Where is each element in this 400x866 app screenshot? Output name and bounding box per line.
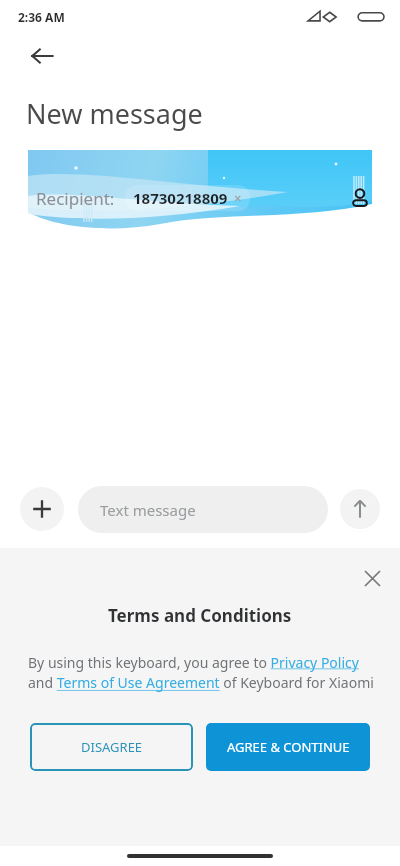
staticText: Terms and Conditions (108, 604, 292, 627)
button[interactable]: DISAGREE (30, 723, 193, 771)
button[interactable]: Text message (78, 486, 328, 533)
staticText: Text message (100, 500, 196, 520)
staticText: By using this keyboard, you agree to Pri… (28, 653, 374, 693)
staticText: 2:36 AM (18, 9, 65, 25)
button[interactable]: Send (340, 489, 380, 529)
staticText: 18730218809 (133, 188, 228, 208)
staticText: DISAGREE (81, 738, 143, 756)
staticText: Recipient: (36, 187, 115, 210)
button[interactable]: AGREE & CONTINUE (206, 723, 370, 771)
button[interactable]: Back (20, 34, 64, 78)
button[interactable]: Add contact (342, 180, 378, 216)
button[interactable]: 18730218809 (125, 185, 250, 211)
button[interactable]: Close (354, 560, 390, 596)
staticText: AGREE & CONTINUE (227, 738, 350, 756)
button[interactable]: Attach (20, 487, 64, 531)
staticText: New message (26, 95, 203, 132)
staticText: × (234, 189, 242, 207)
